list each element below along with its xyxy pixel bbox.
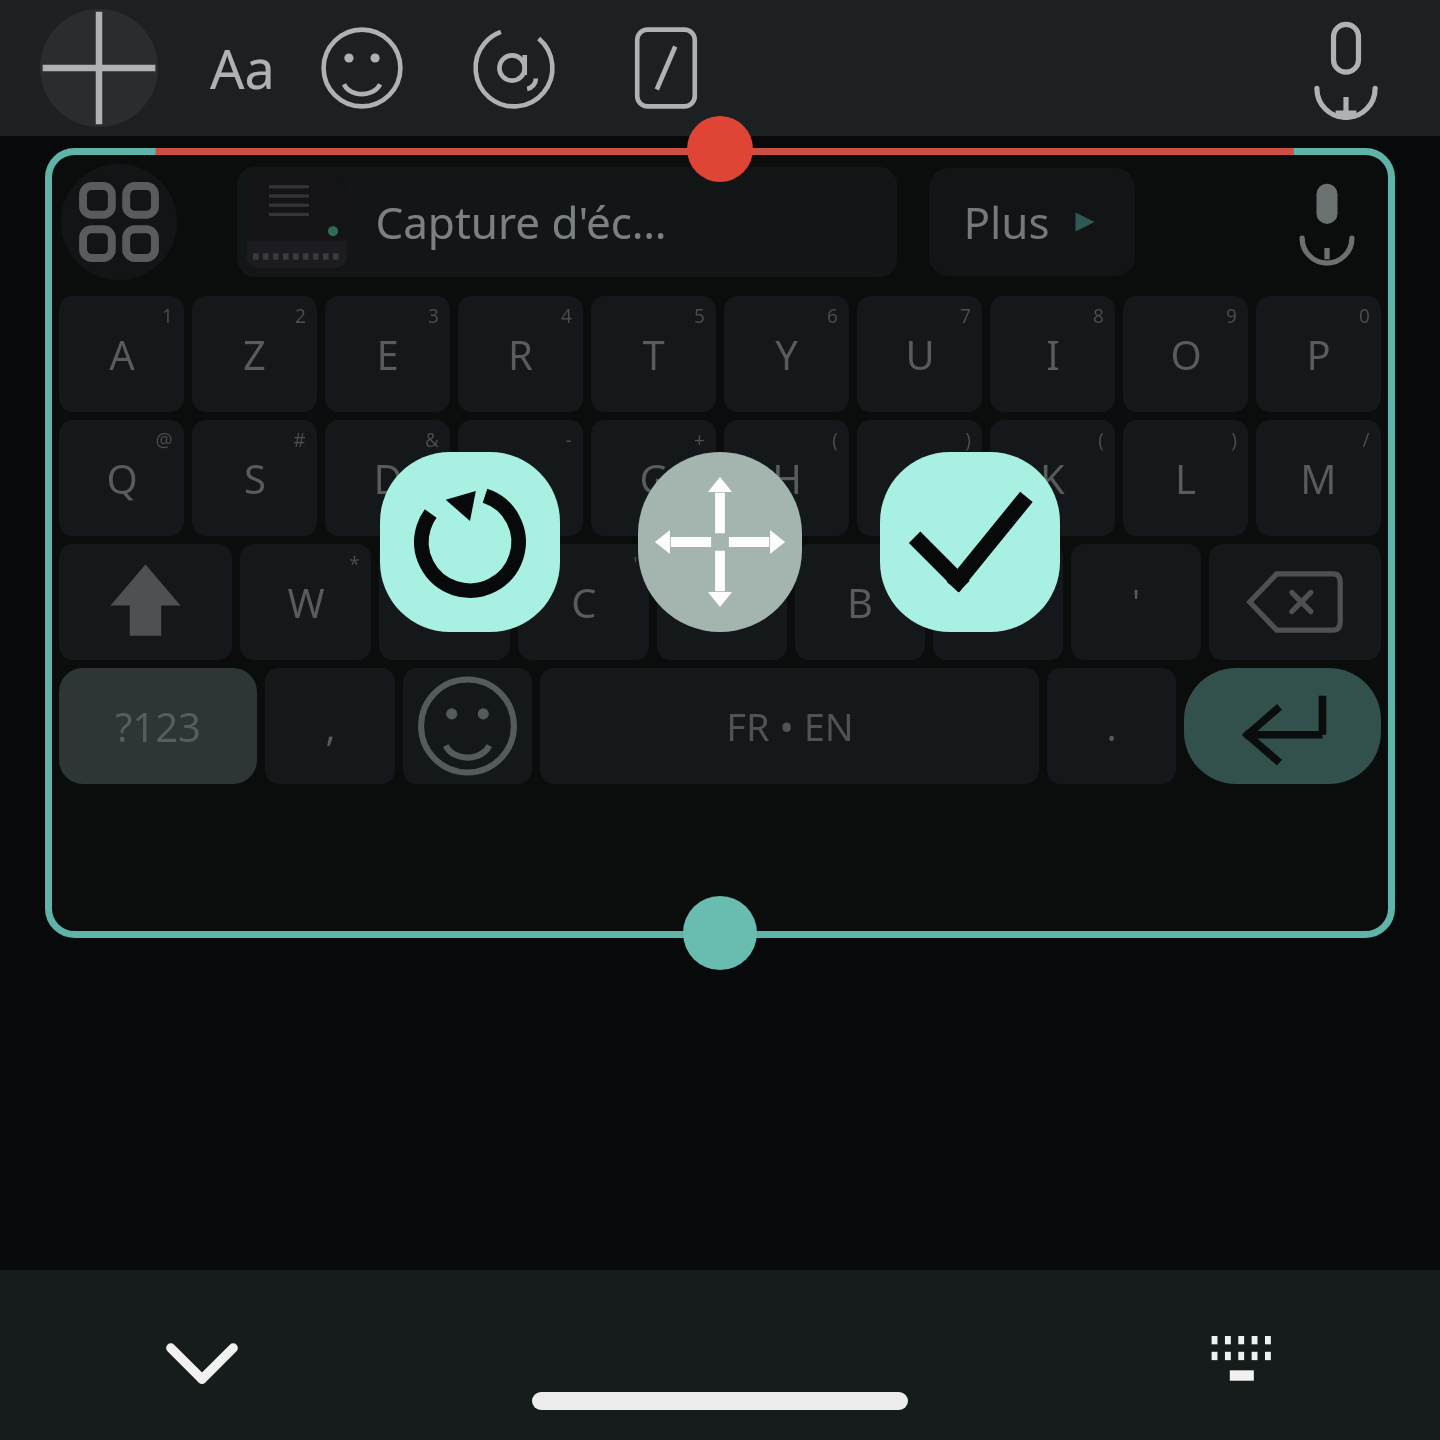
staticText: F xyxy=(510,451,531,505)
staticText: O xyxy=(1170,327,1202,381)
staticText: ' xyxy=(633,551,638,577)
staticText: T xyxy=(642,327,665,381)
button[interactable]: Voice message xyxy=(1294,16,1398,120)
staticText: FR • EN xyxy=(726,700,854,752)
button[interactable]: Q xyxy=(59,420,184,536)
staticText: J xyxy=(914,451,925,505)
staticText: # xyxy=(293,427,306,453)
staticText: K xyxy=(1040,451,1065,505)
staticText: ) xyxy=(965,427,971,453)
button[interactable]: A xyxy=(59,296,184,412)
button[interactable]: N xyxy=(933,544,1063,660)
staticText: 7 xyxy=(960,303,971,329)
staticText: Plus xyxy=(963,192,1050,252)
staticText: C xyxy=(571,575,597,629)
button[interactable]: S xyxy=(192,420,317,536)
staticText: 2 xyxy=(295,303,306,329)
button[interactable]: Commands xyxy=(618,20,714,116)
staticText: - xyxy=(565,427,572,453)
button[interactable]: X xyxy=(379,544,510,660)
staticText: Q xyxy=(106,451,138,505)
staticText: ) xyxy=(1231,427,1237,453)
button[interactable]: O xyxy=(1123,296,1248,412)
staticText: + xyxy=(694,427,705,453)
button[interactable]: Capture d'éc… xyxy=(237,167,897,277)
button[interactable]: Aa xyxy=(194,20,290,116)
button[interactable]: FR • EN xyxy=(540,668,1039,784)
staticText: P xyxy=(1306,327,1331,381)
button[interactable]: M xyxy=(1256,420,1381,536)
button[interactable]: Shift xyxy=(59,544,232,660)
button[interactable]: B xyxy=(795,544,925,660)
button[interactable]: Add xyxy=(40,9,158,127)
button[interactable]: Mention xyxy=(466,20,562,116)
staticText: 3 xyxy=(428,303,439,329)
button[interactable]: V xyxy=(657,544,787,660)
button[interactable]: J xyxy=(857,420,982,536)
staticText: U xyxy=(905,327,935,381)
button[interactable]: Resize bottom xyxy=(683,896,757,970)
button[interactable]: H xyxy=(724,420,849,536)
staticText: / xyxy=(1362,427,1370,453)
button[interactable]: Hide keyboard xyxy=(150,1310,254,1414)
button[interactable]: P xyxy=(1256,296,1381,412)
staticText: Aa xyxy=(210,31,275,105)
button[interactable]: L xyxy=(1123,420,1248,536)
button[interactable]: E xyxy=(325,296,450,412)
staticText: I xyxy=(1046,327,1060,381)
staticText: 9 xyxy=(1226,303,1237,329)
button[interactable]: T xyxy=(591,296,716,412)
staticText: 1 xyxy=(162,303,173,329)
staticText: B xyxy=(847,575,873,629)
button[interactable]: D xyxy=(325,420,450,536)
button[interactable]: Emoji xyxy=(403,668,532,784)
button[interactable]: , xyxy=(265,668,395,784)
button[interactable]: K xyxy=(990,420,1115,536)
button[interactable]: Resize top xyxy=(687,116,753,182)
staticText: 5 xyxy=(694,303,705,329)
button[interactable]: W xyxy=(240,544,371,660)
button[interactable]: F xyxy=(458,420,583,536)
staticText: Y xyxy=(775,327,798,381)
staticText: , xyxy=(325,700,336,752)
staticText: ' xyxy=(1132,579,1140,625)
button[interactable]: I xyxy=(990,296,1115,412)
button[interactable]: R xyxy=(458,296,583,412)
button[interactable]: Z xyxy=(192,296,317,412)
staticText: R xyxy=(508,327,533,381)
button[interactable]: Stickers xyxy=(314,20,410,116)
button[interactable]: G xyxy=(591,420,716,536)
button[interactable]: Y xyxy=(724,296,849,412)
staticText: . xyxy=(1106,700,1117,752)
staticText: X xyxy=(433,575,457,629)
button[interactable]: ?123 xyxy=(59,668,257,784)
button[interactable]: Confirm xyxy=(880,452,1060,632)
staticText: & xyxy=(425,427,439,453)
staticText: " xyxy=(491,551,499,577)
button[interactable]: U xyxy=(857,296,982,412)
staticText: S xyxy=(244,451,266,505)
button[interactable]: C xyxy=(518,544,649,660)
staticText: A xyxy=(109,327,135,381)
staticText: ( xyxy=(1098,427,1104,453)
staticText: 6 xyxy=(827,303,838,329)
button[interactable]: Backspace xyxy=(1209,544,1381,660)
button[interactable]: Enter xyxy=(1184,668,1381,784)
button[interactable]: Reset keyboard size xyxy=(380,452,560,632)
button[interactable]: Plus xyxy=(929,168,1135,276)
staticText: E xyxy=(376,327,399,381)
staticText: Capture d'éc… xyxy=(375,192,667,252)
staticText: 4 xyxy=(561,303,572,329)
button[interactable]: Keyboard modes xyxy=(61,164,177,280)
staticText: W xyxy=(287,575,325,629)
button[interactable]: Voice typing xyxy=(1275,170,1379,274)
button[interactable]: Switch keyboard xyxy=(1196,1310,1300,1414)
button[interactable]: Move keyboard xyxy=(638,452,802,632)
staticText: N xyxy=(983,575,1014,629)
staticText: Z xyxy=(243,327,266,381)
staticText: L xyxy=(1175,451,1196,505)
